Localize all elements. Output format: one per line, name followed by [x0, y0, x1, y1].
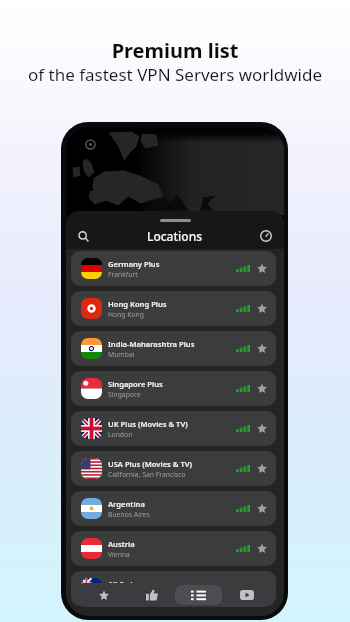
- button[interactable]: India-Maharashtra Plus: [71, 331, 276, 366]
- staticText: UK Plus (Movies & TV): [108, 419, 188, 429]
- button[interactable]: Videos: [223, 585, 270, 605]
- staticText: Germany Plus: [108, 259, 160, 269]
- button[interactable]: Austria: [71, 531, 276, 566]
- staticText: of the fastest VPN Servers worldwide: [0, 63, 350, 86]
- staticText: Argentina: [108, 499, 145, 509]
- button[interactable]: Germany Plus: [71, 251, 276, 286]
- staticText: Frankfurt: [108, 270, 138, 279]
- staticText: Singapore Plus: [108, 379, 163, 389]
- button[interactable]: Recommended: [128, 585, 175, 605]
- staticText: India-Maharashtra Plus: [108, 339, 195, 349]
- button[interactable]: Search: [73, 226, 93, 246]
- staticText: Hong Kong: [108, 310, 144, 319]
- staticText: Mumbai: [108, 350, 135, 359]
- button[interactable]: Favorites: [80, 585, 127, 605]
- staticText: USA Plus (Movies & TV): [108, 459, 193, 469]
- button[interactable]: UK Plus (Movies & TV): [71, 411, 276, 446]
- staticText: Locations: [93, 228, 256, 244]
- button[interactable]: Speed test: [256, 226, 276, 246]
- button[interactable]: All Sydney: [71, 571, 276, 606]
- button[interactable]: Hong Kong Plus: [71, 291, 276, 326]
- staticText: California, San Francisco: [108, 470, 186, 479]
- staticText: Vienna: [108, 550, 130, 559]
- button[interactable]: All locations: [175, 585, 222, 605]
- staticText: London: [108, 430, 133, 439]
- staticText: Hong Kong Plus: [108, 299, 167, 309]
- staticText: Premium list: [0, 37, 350, 64]
- button[interactable]: USA Plus (Movies & TV): [71, 451, 276, 486]
- staticText: Singapore: [108, 390, 141, 399]
- staticText: Austria: [108, 539, 135, 549]
- staticText: All Sydney: [108, 579, 146, 589]
- button[interactable]: Argentina: [71, 491, 276, 526]
- staticText: Buenos Aires: [108, 510, 150, 519]
- staticText: Sydney: [108, 590, 131, 599]
- button[interactable]: Singapore Plus: [71, 371, 276, 406]
